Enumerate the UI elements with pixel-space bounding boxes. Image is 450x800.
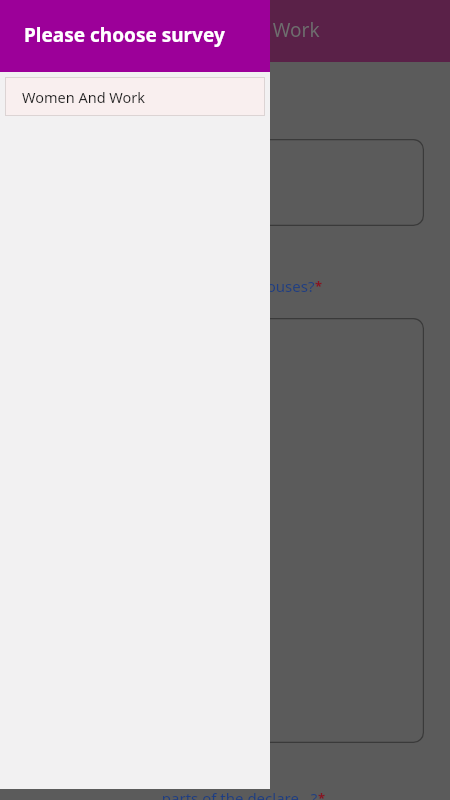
button[interactable]: Women And Work (5, 77, 265, 116)
staticText: Women And Work (22, 87, 146, 107)
staticText: * (315, 277, 323, 295)
staticText: …parts of the declare…? (150, 788, 318, 800)
staticText: …parts of their houses? (150, 276, 315, 296)
staticText: Women & Work (180, 17, 320, 43)
staticText: * (318, 789, 326, 800)
staticText: Please choose survey (24, 22, 225, 48)
